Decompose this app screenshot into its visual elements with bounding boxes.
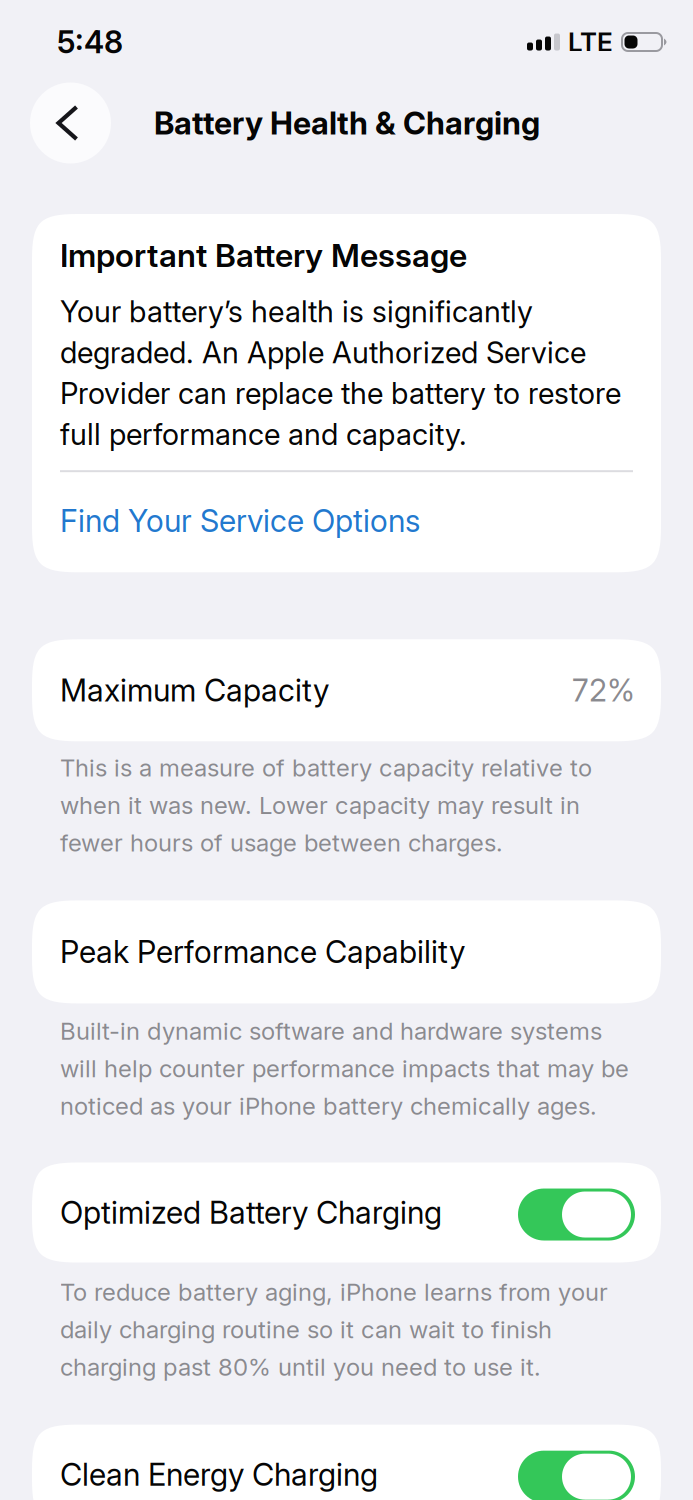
staticText: Battery Health & Charging bbox=[154, 104, 540, 142]
staticText: To reduce battery aging, iPhone learns f… bbox=[60, 1277, 608, 1306]
staticText: degraded. An Apple Authorized Service bbox=[60, 335, 586, 370]
staticText: when it was new. Lower capacity may resu… bbox=[60, 791, 580, 820]
staticText: Built-in dynamic software and hardware s… bbox=[60, 1016, 602, 1045]
staticText: will help counter performance impacts th… bbox=[60, 1054, 629, 1083]
staticText: full performance and capacity. bbox=[60, 417, 467, 452]
staticText: Clean Energy Charging bbox=[60, 1456, 378, 1493]
button[interactable]: Optimized Battery Charging bbox=[32, 1162, 661, 1262]
staticText: noticed as your iPhone battery chemicall… bbox=[60, 1091, 597, 1120]
staticText: daily charging routine so it can wait to… bbox=[60, 1315, 552, 1344]
staticText: 72% bbox=[572, 672, 635, 709]
staticText: Important Battery Message bbox=[60, 236, 467, 275]
staticText: Peak Performance Capability bbox=[60, 933, 465, 970]
staticText: charging past 80% until you need to use … bbox=[60, 1353, 541, 1382]
staticText: This is a measure of battery capacity re… bbox=[60, 753, 592, 782]
button[interactable]: Peak Performance Capability bbox=[32, 900, 661, 1003]
staticText: Optimized Battery Charging bbox=[60, 1194, 442, 1231]
staticText: Maximum Capacity bbox=[60, 672, 329, 709]
staticText: LTE bbox=[568, 26, 613, 58]
button[interactable]: Find Your Service Options bbox=[60, 472, 633, 572]
staticText: Your battery’s health is significantly bbox=[60, 294, 533, 329]
button[interactable]: Back bbox=[30, 82, 111, 163]
button[interactable]: Clean Energy Charging bbox=[32, 1425, 661, 1500]
staticText: fewer hours of usage between charges. bbox=[60, 828, 503, 857]
staticText: Find Your Service Options bbox=[60, 502, 420, 539]
staticText: 5:48 bbox=[57, 23, 123, 60]
staticText: Provider can replace the battery to rest… bbox=[60, 376, 621, 411]
